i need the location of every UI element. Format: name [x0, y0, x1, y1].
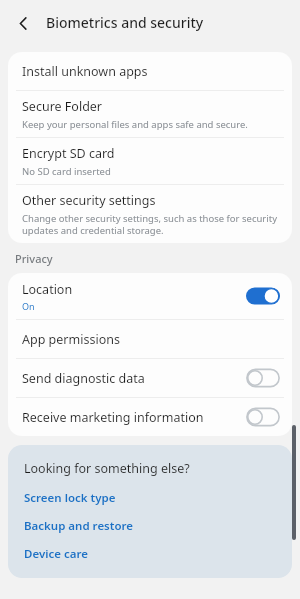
staticText: Send diagnostic data [22, 370, 145, 387]
staticText: Screen lock type [24, 490, 116, 506]
button[interactable]: Send diagnostic data [8, 359, 292, 397]
staticText: Receive marketing information [22, 409, 204, 426]
button[interactable]: Encrypt SD card [8, 138, 292, 184]
staticText: Privacy [15, 251, 53, 266]
staticText: Location [22, 281, 73, 298]
button[interactable]: Back [7, 7, 39, 39]
staticText: Looking for something else? [24, 460, 190, 477]
button[interactable]: App permissions [8, 320, 292, 358]
button[interactable]: Switch on [246, 286, 280, 306]
staticText: App permissions [22, 331, 120, 348]
button[interactable]: Install unknown apps [8, 52, 292, 90]
staticText: No SD card inserted [22, 165, 111, 178]
button[interactable]: Receive marketing information [8, 398, 292, 436]
staticText: On [22, 300, 35, 312]
staticText: Biometrics and security [46, 13, 204, 32]
staticText: Other security settings [22, 192, 156, 209]
staticText: Keep your personal files and apps safe a… [22, 118, 248, 131]
button[interactable]: Secure Folder [8, 91, 292, 137]
staticText: Change other security settings, such as … [22, 212, 278, 237]
button[interactable]: Device care [24, 546, 88, 562]
button[interactable]: Switch off [246, 368, 280, 388]
staticText: Backup and restore [24, 518, 134, 534]
button[interactable]: Screen lock type [24, 490, 116, 506]
staticText: Install unknown apps [22, 63, 148, 80]
button[interactable]: Other security settings [8, 185, 292, 243]
staticText: Secure Folder [22, 98, 103, 115]
staticText: Device care [24, 546, 88, 562]
button[interactable]: Switch off [246, 407, 280, 427]
staticText: Encrypt SD card [22, 145, 115, 162]
button[interactable]: Backup and restore [24, 518, 134, 534]
button[interactable]: Location [8, 273, 292, 319]
